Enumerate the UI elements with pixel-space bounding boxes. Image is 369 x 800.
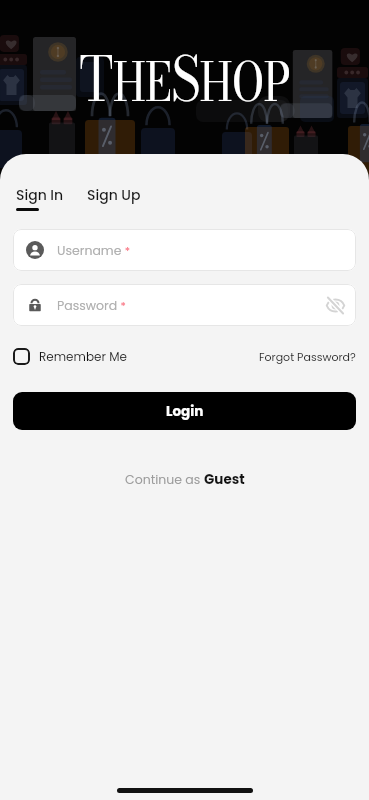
button[interactable]: Username * bbox=[13, 229, 356, 271]
staticText: Username * bbox=[57, 242, 131, 259]
staticText: THESHOP bbox=[79, 31, 291, 126]
button[interactable]: Sign Up bbox=[87, 185, 141, 205]
button[interactable]: Password * bbox=[13, 284, 356, 326]
button[interactable]: Continue as bbox=[125, 470, 245, 489]
button[interactable]: Remember Me bbox=[13, 348, 127, 365]
button[interactable]: Show password bbox=[323, 293, 347, 317]
staticText: Sign Up bbox=[87, 185, 141, 205]
staticText: Login bbox=[166, 402, 204, 421]
button[interactable]: Forgot Password? bbox=[259, 349, 356, 364]
button[interactable]: Login bbox=[13, 392, 356, 430]
staticText: Remember Me bbox=[39, 348, 127, 365]
staticText: Sign In bbox=[16, 185, 64, 205]
staticText: Continue as bbox=[125, 471, 204, 488]
button[interactable]: Sign In bbox=[16, 185, 64, 211]
staticText: Guest bbox=[204, 470, 245, 489]
staticText: Forgot Password? bbox=[259, 349, 356, 364]
staticText: Password * bbox=[57, 297, 126, 314]
